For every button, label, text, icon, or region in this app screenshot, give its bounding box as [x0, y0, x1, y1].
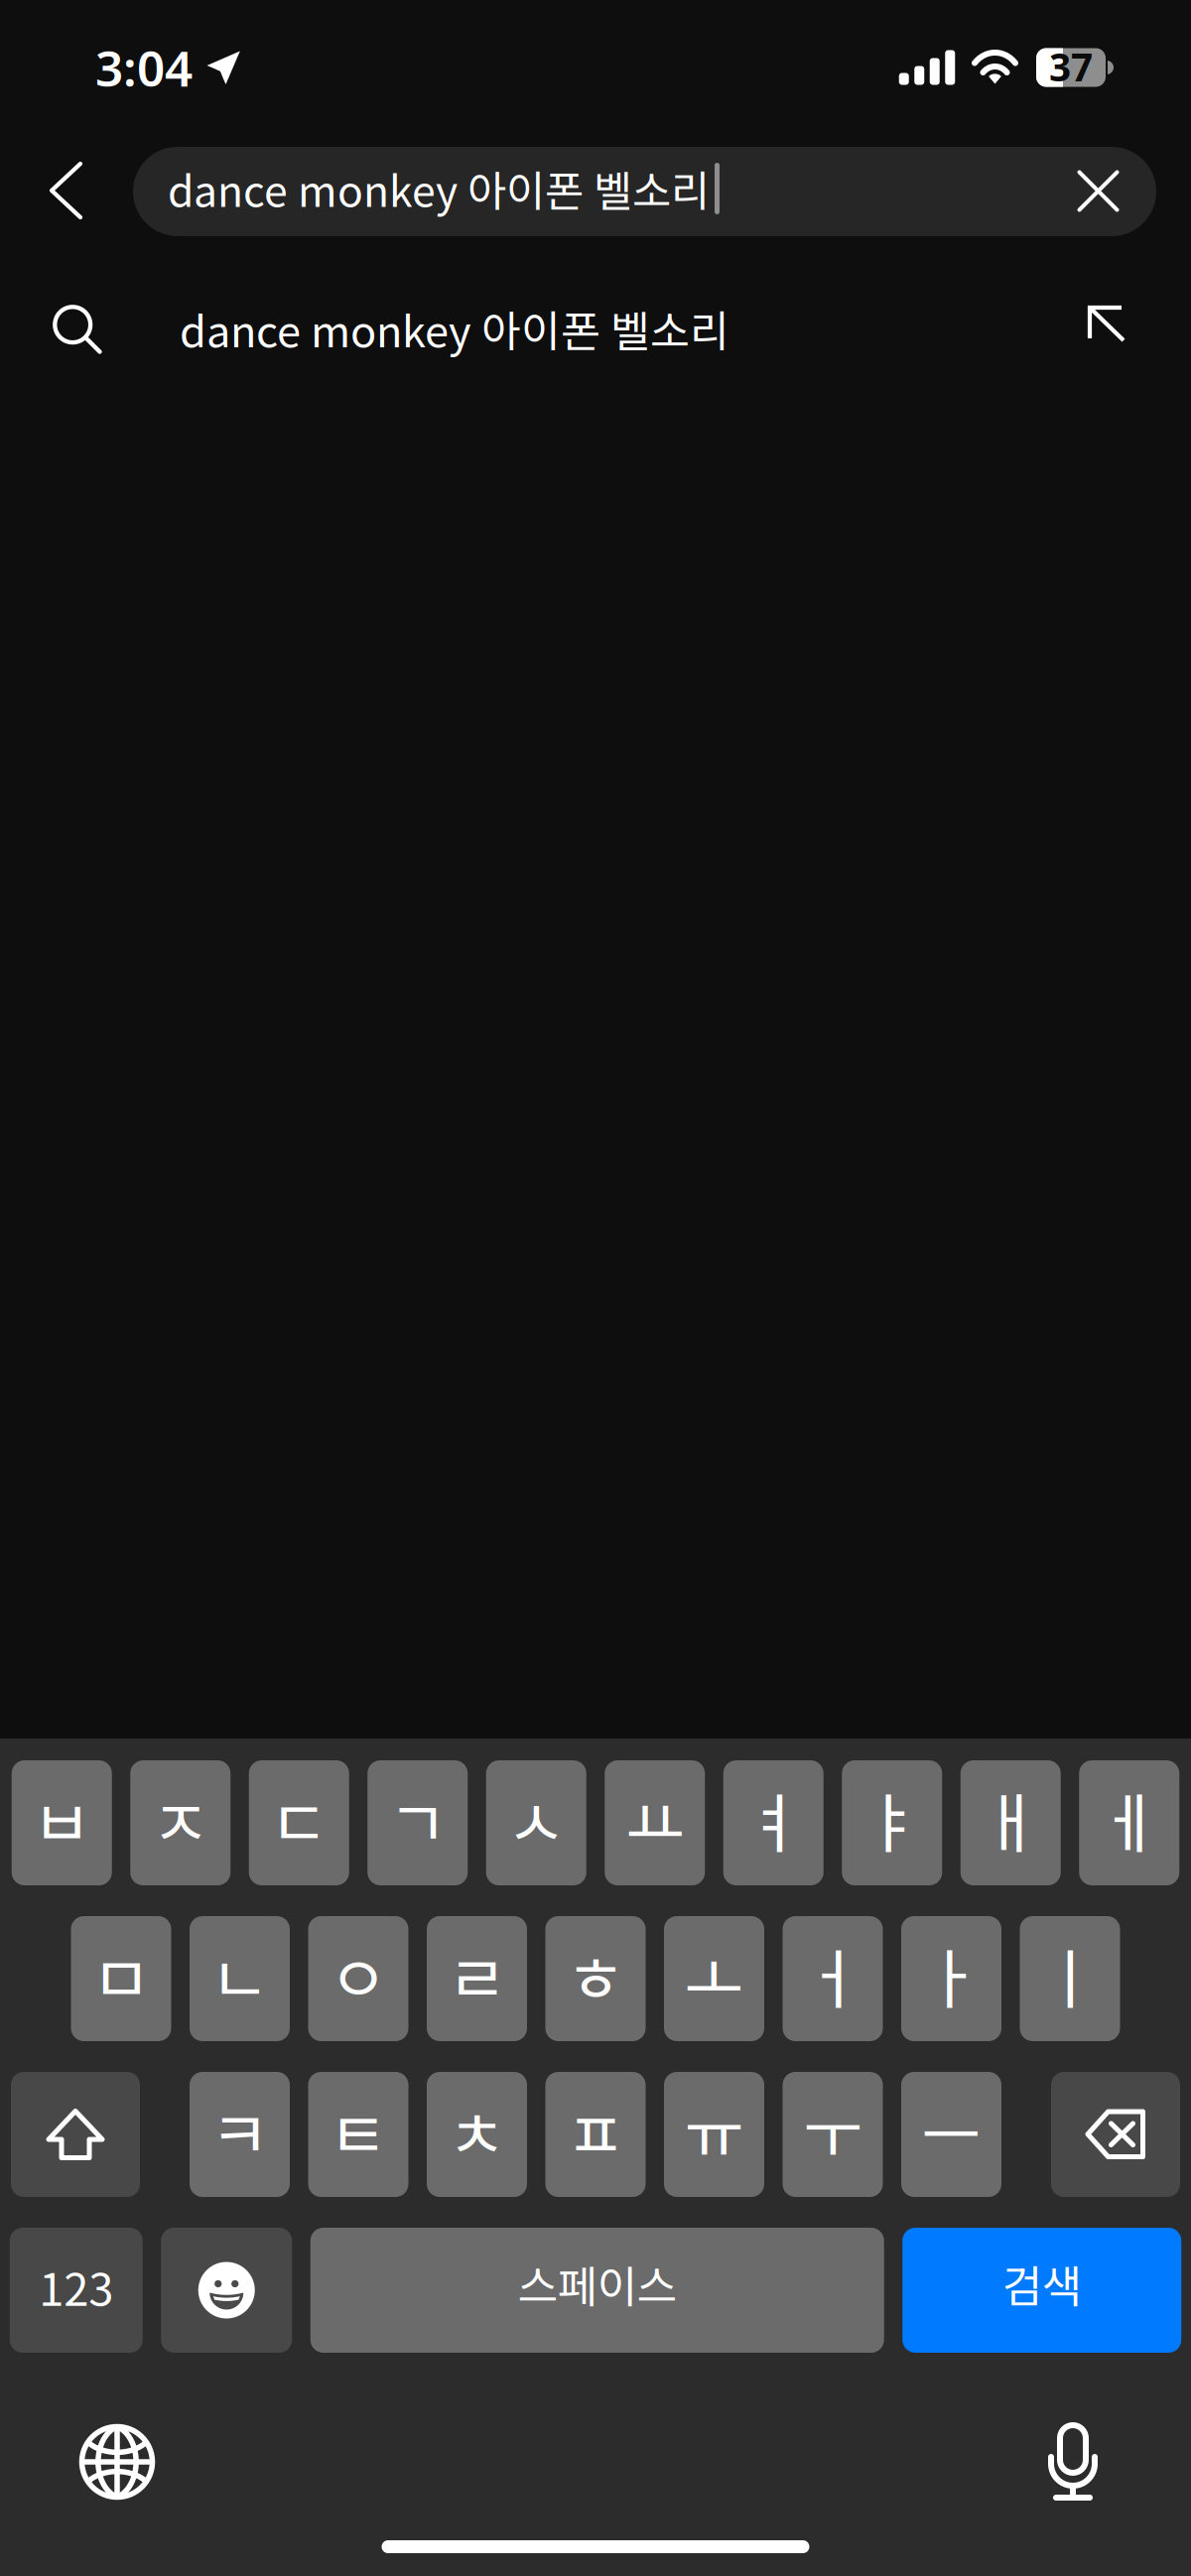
staticText: ㅣ — [1040, 1928, 1100, 2022]
button[interactable]: ㄷ — [249, 1760, 349, 1885]
button[interactable]: ㅈ — [130, 1760, 230, 1885]
staticText: ㄴ — [210, 1928, 269, 2022]
staticText: 123 — [39, 2254, 113, 2319]
staticText: ㅡ — [922, 2084, 981, 2177]
staticText: 37 — [1049, 41, 1093, 92]
staticText: ㅂ — [32, 1772, 92, 1866]
staticText: ㅅ — [506, 1772, 566, 1866]
staticText: ㅋ — [210, 2084, 269, 2177]
staticText: ㅑ — [862, 1772, 922, 1866]
staticText: ㄹ — [447, 1928, 507, 2022]
button[interactable]: Back — [15, 147, 118, 236]
button[interactable]: ㅐ — [961, 1760, 1061, 1885]
button[interactable]: ㅎ — [545, 1916, 646, 2041]
button[interactable]: ㅂ — [12, 1760, 112, 1885]
button[interactable]: Dictate — [1026, 2414, 1122, 2510]
staticText: ㅍ — [566, 2084, 625, 2177]
button[interactable]: Clear text — [1041, 147, 1156, 236]
button[interactable]: ㅌ — [308, 2072, 408, 2197]
staticText: 3:04 — [95, 35, 193, 100]
staticText: ㅗ — [684, 1928, 744, 2022]
button[interactable]: ㅅ — [486, 1760, 586, 1885]
button[interactable]: Shift — [11, 2072, 140, 2197]
button[interactable]: ㅡ — [901, 2072, 1001, 2197]
staticText: ㅐ — [981, 1772, 1040, 1866]
staticText: dance monkey 아이폰 벨소리 — [168, 158, 710, 219]
staticText: ㅠ — [684, 2084, 744, 2177]
button[interactable]: ㅋ — [190, 2072, 290, 2197]
button[interactable]: ㅠ — [664, 2072, 764, 2197]
staticText: ㄱ — [388, 1772, 447, 1866]
staticText: ㅈ — [151, 1772, 210, 1866]
staticText: ㅌ — [329, 2084, 388, 2177]
staticText: ㅔ — [1099, 1772, 1159, 1866]
button[interactable]: ㄴ — [190, 1916, 290, 2041]
button[interactable]: ㅜ — [783, 2072, 883, 2197]
button[interactable]: ㅊ — [427, 2072, 527, 2197]
button[interactable]: 123 — [10, 2228, 143, 2353]
staticText: ㅜ — [803, 2084, 862, 2177]
button[interactable]: 검색 — [902, 2228, 1181, 2353]
button[interactable]: Emoji — [161, 2228, 292, 2353]
staticText: ㅇ — [329, 1928, 388, 2022]
button[interactable]: ㅣ — [1020, 1916, 1120, 2041]
staticText: ㅓ — [803, 1928, 862, 2022]
button[interactable]: ㅗ — [664, 1916, 764, 2041]
button[interactable]: ㅑ — [842, 1760, 942, 1885]
button[interactable]: ㅍ — [545, 2072, 646, 2197]
button[interactable]: Delete — [1051, 2072, 1180, 2197]
button[interactable]: ㅁ — [71, 1916, 171, 2041]
button[interactable]: dance monkey 아이폰 벨소리 — [0, 268, 1191, 379]
staticText: ㄷ — [269, 1772, 329, 1866]
staticText: dance monkey 아이폰 벨소리 — [180, 297, 729, 360]
staticText: 스페이스 — [518, 2252, 677, 2315]
button[interactable]: ㅔ — [1079, 1760, 1179, 1885]
staticText: ㅎ — [566, 1928, 625, 2022]
button[interactable]: ㄱ — [367, 1760, 468, 1885]
button[interactable]: ㅕ — [723, 1760, 824, 1885]
staticText: ㅏ — [922, 1928, 981, 2022]
button[interactable]: Change keyboard — [69, 2414, 165, 2510]
button[interactable]: ㅛ — [605, 1760, 705, 1885]
button[interactable]: ㅏ — [901, 1916, 1001, 2041]
button[interactable]: ㅇ — [308, 1916, 408, 2041]
staticText: ㅛ — [625, 1772, 685, 1866]
staticText: ㅁ — [91, 1928, 151, 2022]
button[interactable]: ㅓ — [783, 1916, 883, 2041]
staticText: ㅕ — [744, 1772, 803, 1866]
staticText: ㅊ — [447, 2084, 507, 2177]
button[interactable]: 스페이스 — [310, 2228, 884, 2353]
button[interactable]: ㄹ — [427, 1916, 527, 2041]
staticText: 검색 — [1002, 2252, 1082, 2315]
